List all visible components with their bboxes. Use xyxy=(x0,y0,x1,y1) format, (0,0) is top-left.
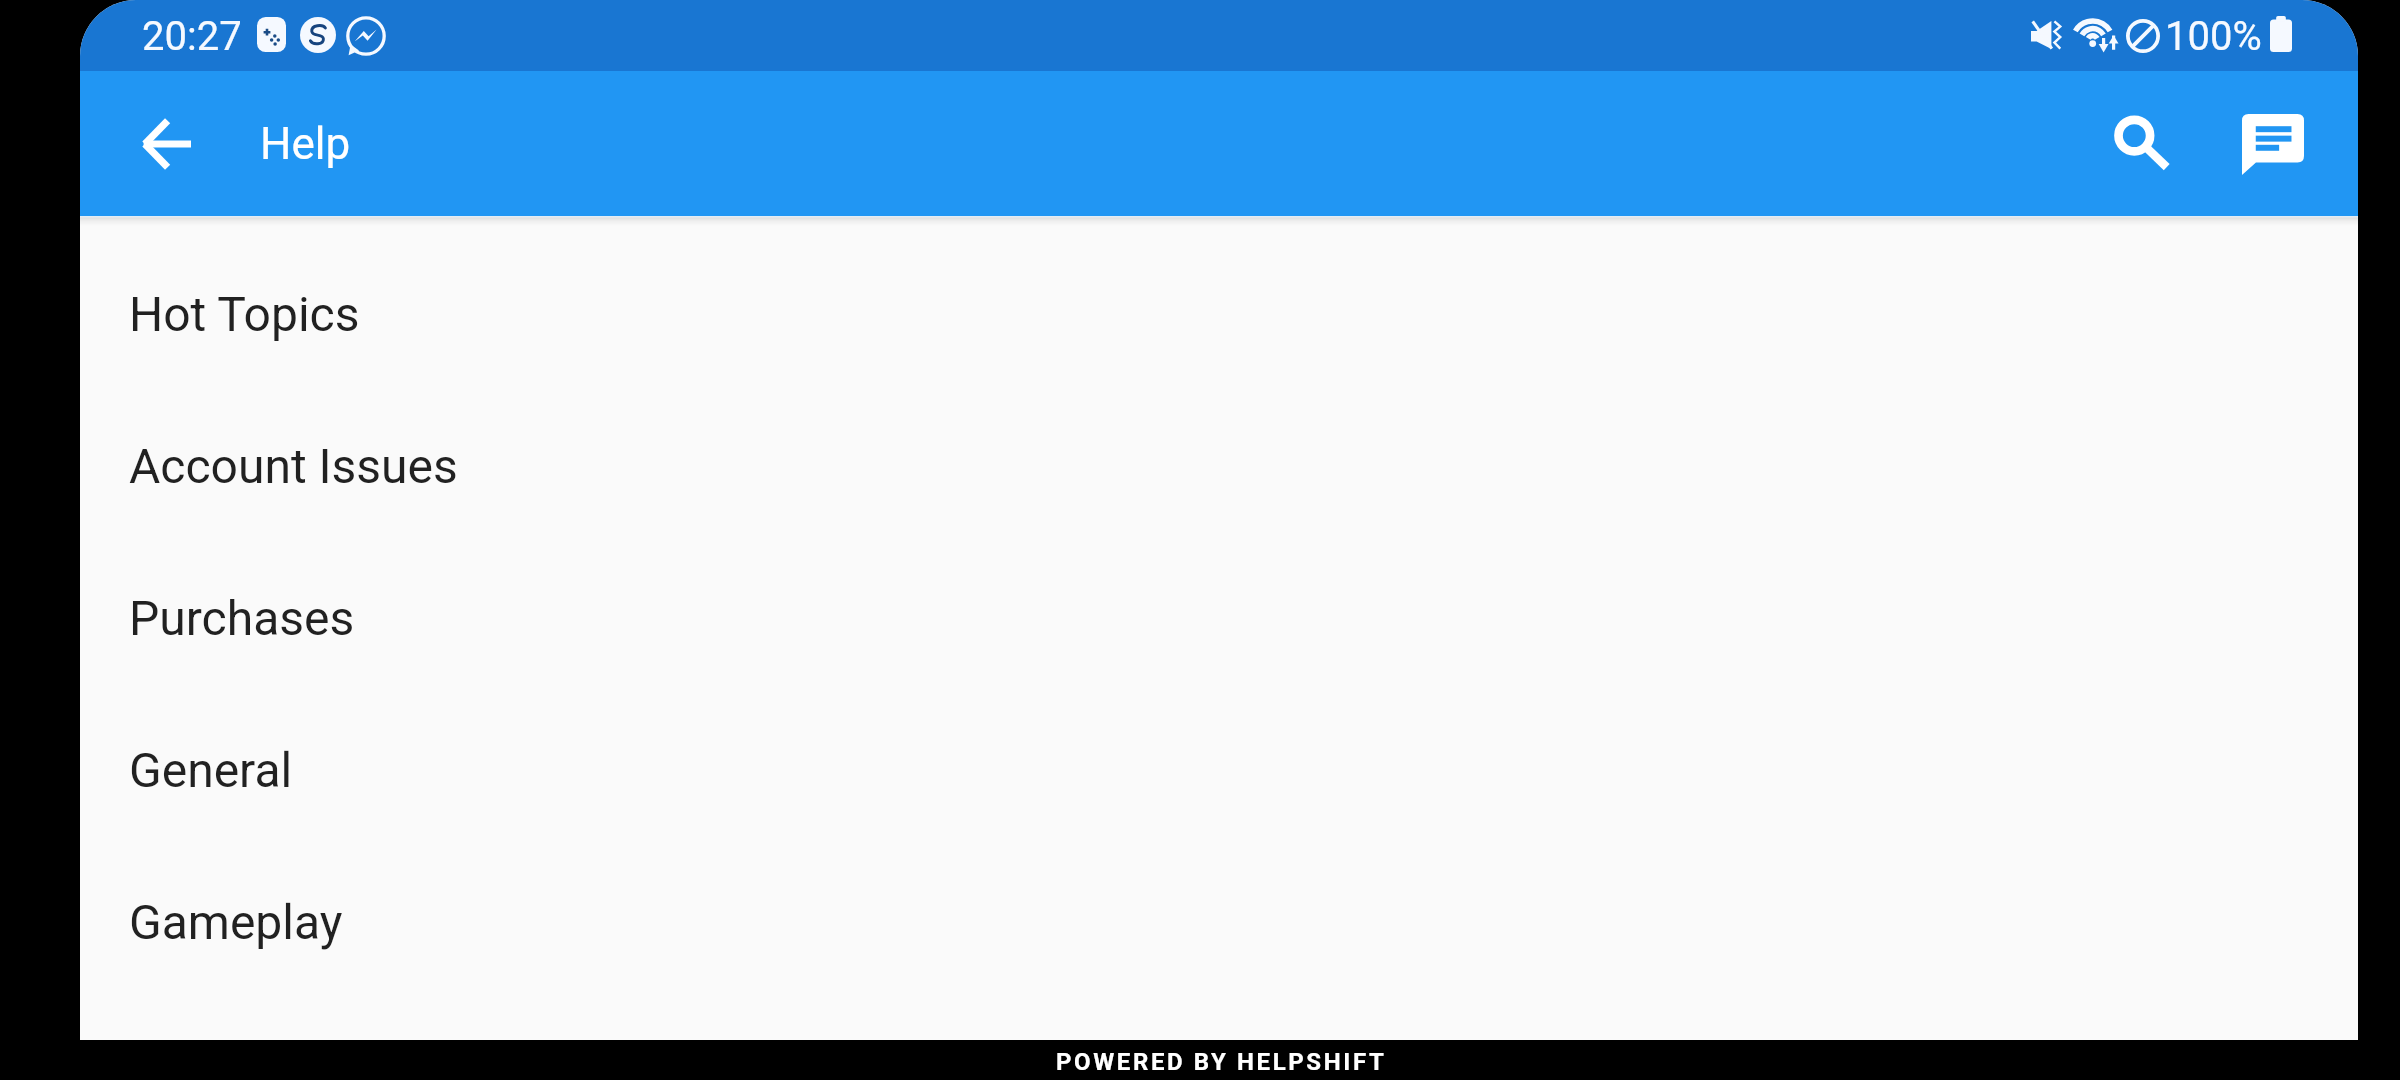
staticText: Hot Topics xyxy=(129,286,360,342)
staticText: General xyxy=(129,742,293,798)
staticText: POWERED BY HELPSHIFT xyxy=(1056,1048,1387,1076)
button[interactable]: Navigate up xyxy=(115,92,219,196)
staticText: 20:27 xyxy=(142,13,242,60)
button[interactable]: Purchases xyxy=(80,542,2358,694)
staticText: 100% xyxy=(2165,13,2262,60)
button[interactable]: Account Issues xyxy=(80,390,2358,542)
staticText: Help xyxy=(260,118,351,170)
button[interactable]: Gameplay xyxy=(80,846,2358,998)
button[interactable]: General xyxy=(80,694,2358,846)
staticText: Account Issues xyxy=(129,438,458,494)
staticText: Gameplay xyxy=(129,894,343,950)
button[interactable]: Search xyxy=(2089,90,2193,194)
button[interactable]: Start a conversation xyxy=(2221,92,2325,196)
button[interactable]: Hot Topics xyxy=(80,238,2358,390)
staticText: Purchases xyxy=(129,590,355,646)
